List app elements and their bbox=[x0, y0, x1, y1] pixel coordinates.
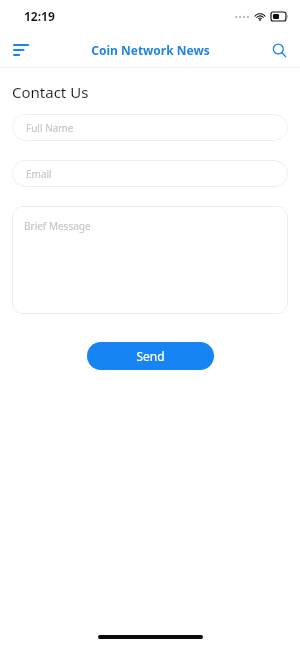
button[interactable]: Open navigation menu bbox=[8, 37, 34, 63]
staticText: Contact Us bbox=[12, 82, 89, 102]
staticText: Brief Message bbox=[24, 219, 91, 233]
staticText: Email bbox=[26, 167, 52, 181]
staticText: Send bbox=[136, 348, 165, 364]
staticText: Coin Network News bbox=[91, 42, 210, 58]
button[interactable]: Full Name bbox=[12, 114, 288, 141]
button[interactable]: Email bbox=[12, 160, 288, 187]
button[interactable]: Brief Message bbox=[12, 206, 288, 314]
button[interactable]: Send bbox=[87, 342, 214, 370]
button[interactable]: Search bbox=[266, 37, 292, 63]
staticText: Full Name bbox=[26, 121, 74, 135]
staticText: 12:19 bbox=[24, 8, 55, 24]
